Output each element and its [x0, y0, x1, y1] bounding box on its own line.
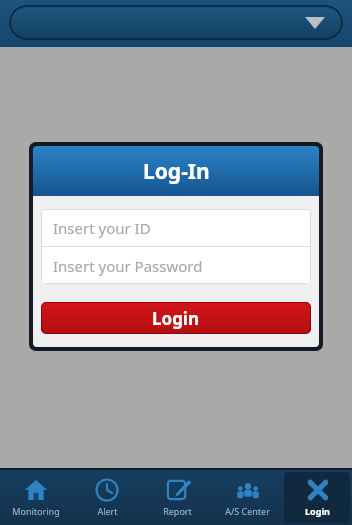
button[interactable]: Login	[41, 302, 311, 334]
staticText: Insert your ID	[53, 218, 151, 238]
other: Report	[166, 478, 190, 502]
staticText: Log-In	[143, 157, 210, 186]
other: Alert	[95, 478, 119, 502]
button[interactable]: Report	[144, 472, 210, 523]
staticText: Report	[163, 505, 192, 517]
staticText: Alert	[97, 505, 118, 517]
staticText: Monitoring	[12, 505, 60, 517]
button[interactable]: Insert your Password	[41, 247, 311, 284]
button[interactable]: Monitoring	[2, 472, 69, 523]
button[interactable]: Select site	[9, 5, 343, 40]
staticText: A/S Center	[225, 505, 270, 517]
staticText: Login	[152, 307, 200, 330]
other: A/S Center	[236, 478, 260, 502]
button[interactable]: Login	[284, 472, 350, 523]
button[interactable]: A/S Center	[214, 472, 280, 523]
staticText: Login	[305, 505, 330, 517]
button[interactable]: Insert your ID	[41, 209, 311, 246]
button[interactable]: Alert	[73, 472, 140, 523]
staticText: Insert your Password	[53, 256, 203, 276]
other: Monitoring	[24, 478, 48, 502]
other: Login	[306, 478, 330, 502]
